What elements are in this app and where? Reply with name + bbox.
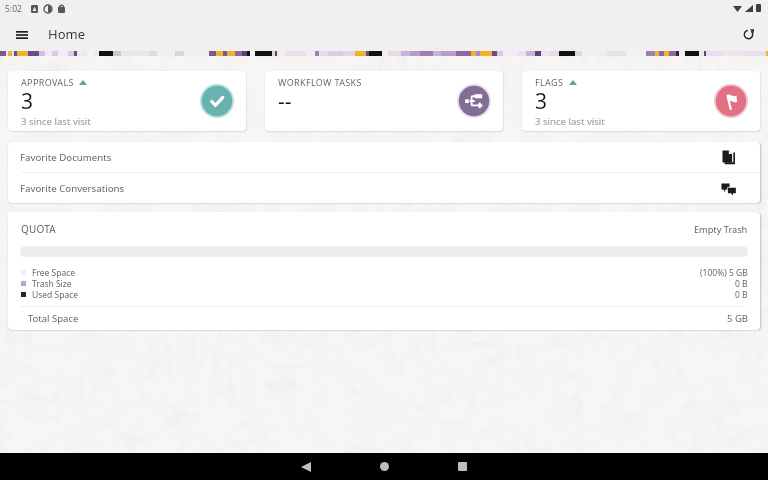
- button[interactable]: Home: [345, 453, 423, 480]
- button[interactable]: Back: [267, 453, 345, 480]
- staticText: QUOTA: [21, 222, 56, 236]
- staticText: Trash Size: [32, 278, 72, 289]
- staticText: 0 B: [735, 278, 748, 289]
- staticText: Home: [48, 25, 85, 43]
- staticText: Empty Trash: [694, 223, 748, 236]
- staticText: 5:02: [5, 3, 22, 15]
- button[interactable]: APPROVALS: [8, 71, 246, 131]
- staticText: 3 since last visit: [535, 115, 605, 128]
- staticText: 3: [535, 87, 548, 116]
- staticText: Used Space: [32, 289, 79, 300]
- staticText: Favorite Documents: [20, 151, 112, 164]
- staticText: Favorite Conversations: [20, 182, 125, 195]
- staticText: FLAGS: [535, 76, 564, 88]
- staticText: Free Space: [32, 267, 76, 278]
- button[interactable]: Favorite Conversations: [8, 173, 760, 203]
- button[interactable]: Menu: [8, 21, 35, 48]
- staticText: 0 B: [735, 289, 748, 300]
- staticText: APPROVALS: [21, 76, 74, 88]
- staticText: Total Space: [28, 312, 79, 325]
- staticText: --: [278, 87, 292, 116]
- staticText: 5 GB: [727, 312, 748, 325]
- staticText: 3 since last visit: [21, 115, 91, 128]
- staticText: (100%) 5 GB: [700, 267, 748, 278]
- button[interactable]: WORKFLOW TASKS: [265, 71, 503, 131]
- button[interactable]: Refresh: [735, 21, 762, 48]
- staticText: 3: [21, 87, 34, 116]
- button[interactable]: FLAGS: [522, 71, 760, 131]
- staticText: WORKFLOW TASKS: [278, 76, 362, 88]
- button[interactable]: Recents: [423, 453, 501, 480]
- button[interactable]: Empty Trash: [694, 223, 748, 236]
- button[interactable]: Favorite Documents: [8, 142, 760, 172]
